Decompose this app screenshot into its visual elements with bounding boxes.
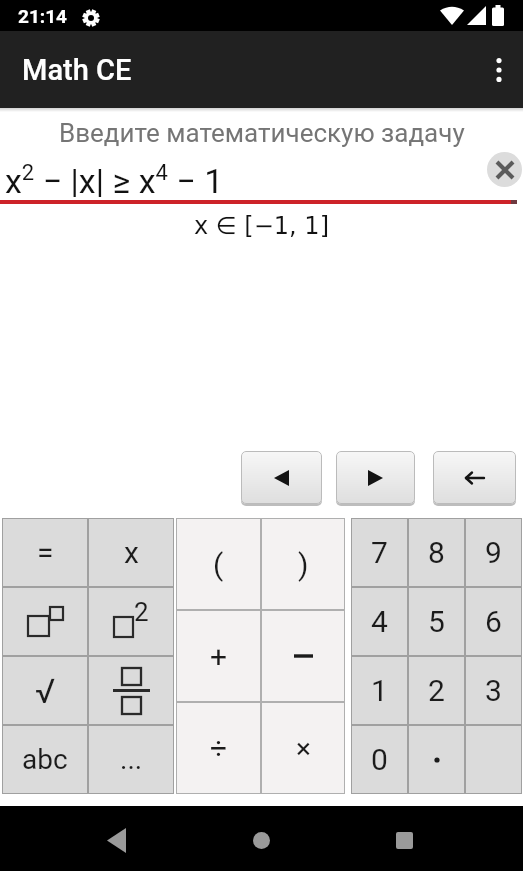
staticText: √ bbox=[35, 671, 56, 711]
button[interactable] bbox=[241, 451, 322, 504]
button[interactable]: 9 bbox=[465, 518, 522, 587]
button[interactable] bbox=[261, 610, 345, 702]
staticText: 21:14 bbox=[18, 5, 67, 27]
button[interactable]: 0 bbox=[351, 725, 408, 794]
staticText: ÷ bbox=[210, 731, 228, 766]
button[interactable]: ... bbox=[88, 725, 174, 794]
staticText: 3 bbox=[485, 673, 502, 708]
staticText: 8 bbox=[428, 535, 445, 570]
button[interactable] bbox=[408, 725, 465, 794]
staticText: 7 bbox=[371, 535, 388, 570]
button[interactable]: √ bbox=[2, 656, 88, 725]
staticText: ) bbox=[298, 547, 309, 582]
staticText: 0 bbox=[371, 742, 388, 777]
button[interactable]: abc bbox=[2, 725, 88, 794]
button[interactable]: = bbox=[2, 518, 88, 587]
button[interactable]: 2 bbox=[408, 656, 465, 725]
button[interactable] bbox=[237, 816, 285, 864]
button[interactable] bbox=[88, 656, 174, 725]
button[interactable]: × bbox=[261, 702, 345, 794]
button[interactable]: x bbox=[88, 518, 174, 587]
button[interactable] bbox=[487, 152, 522, 187]
staticText: 6 bbox=[485, 604, 502, 639]
button[interactable]: 4 bbox=[351, 587, 408, 656]
button[interactable]: ( bbox=[176, 518, 261, 610]
button[interactable] bbox=[336, 451, 415, 504]
button[interactable] bbox=[92, 816, 140, 864]
button[interactable]: 7 bbox=[351, 518, 408, 587]
staticText: x bbox=[124, 535, 139, 570]
staticText: ( bbox=[213, 547, 224, 582]
button[interactable]: 1 bbox=[351, 656, 408, 725]
button[interactable]: 6 bbox=[465, 587, 522, 656]
staticText: Math CE bbox=[22, 53, 132, 87]
button[interactable]: 2 bbox=[88, 587, 174, 656]
staticText: + bbox=[210, 639, 228, 674]
staticText: 5 bbox=[428, 604, 445, 639]
staticText: = bbox=[37, 535, 54, 570]
button[interactable] bbox=[380, 816, 428, 864]
staticText: 1 bbox=[371, 673, 388, 708]
button[interactable]: 5 bbox=[408, 587, 465, 656]
staticText: abc bbox=[22, 743, 68, 776]
staticText: x2 − |x| ≥ x4 − 1 bbox=[5, 160, 224, 201]
button[interactable]: 8 bbox=[408, 518, 465, 587]
staticText: × bbox=[296, 732, 311, 765]
button[interactable] bbox=[465, 725, 522, 794]
staticText: x ∈ [−1, 1] bbox=[194, 212, 329, 240]
staticText: ... bbox=[120, 743, 143, 776]
button[interactable]: ) bbox=[261, 518, 345, 610]
button[interactable] bbox=[475, 46, 523, 94]
staticText: 9 bbox=[485, 535, 502, 570]
button[interactable]: 3 bbox=[465, 656, 522, 725]
staticText: Введите математическую задачу bbox=[59, 118, 465, 148]
staticText: 2 bbox=[428, 673, 445, 708]
button[interactable] bbox=[2, 587, 88, 656]
button[interactable]: + bbox=[176, 610, 261, 702]
staticText: 2 bbox=[134, 597, 149, 627]
button[interactable]: ÷ bbox=[176, 702, 261, 794]
staticText: 4 bbox=[371, 604, 388, 639]
button[interactable] bbox=[433, 451, 516, 504]
